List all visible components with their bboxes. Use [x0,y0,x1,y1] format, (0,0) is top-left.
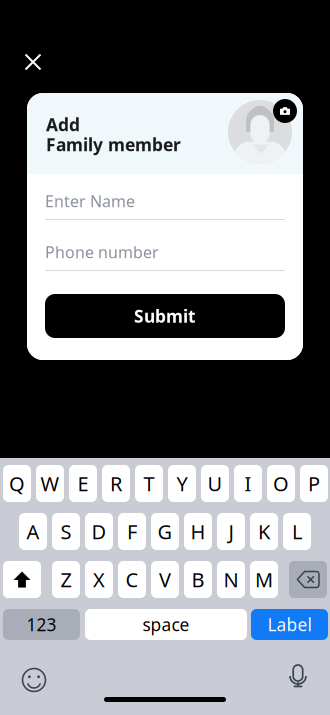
button[interactable]: B [184,561,212,598]
button[interactable]: M [250,561,278,598]
staticText: Q [9,470,25,497]
button[interactable]: Change photo [273,99,297,123]
button[interactable]: Label [251,609,328,640]
button[interactable]: O [267,465,295,502]
button[interactable]: Dictation [280,659,316,695]
staticText: F [127,518,137,545]
button[interactable]: T [135,465,163,502]
button[interactable]: V [151,561,179,598]
staticText: B [191,566,204,593]
button[interactable]: Submit [45,294,285,338]
button[interactable]: R [102,465,130,502]
staticText: M [255,566,273,593]
button[interactable]: P [300,465,328,502]
staticText: Phone number [45,241,159,263]
button[interactable]: Q [3,465,31,502]
button[interactable]: Enter Name [45,192,285,220]
button[interactable]: J [217,513,245,550]
staticText: G [157,518,172,545]
button[interactable]: I [234,465,262,502]
staticText: L [292,518,302,545]
button[interactable]: L [283,513,311,550]
button[interactable]: Delete [289,561,327,598]
staticText: H [190,518,205,545]
staticText: Family member [46,133,181,156]
staticText: K [258,518,270,545]
button[interactable]: Shift [3,561,41,598]
staticText: V [159,566,171,593]
button[interactable]: H [184,513,212,550]
button[interactable]: A [19,513,47,550]
staticText: A [26,518,39,545]
staticText: space [142,613,189,636]
staticText: Z [60,566,71,593]
staticText: Add [46,113,80,136]
staticText: P [308,470,320,497]
button[interactable]: Emoji [16,662,52,698]
staticText: R [110,470,122,497]
button[interactable]: F [118,513,146,550]
button[interactable]: S [52,513,80,550]
staticText: Y [176,470,187,497]
button[interactable]: G [151,513,179,550]
staticText: E [77,470,88,497]
staticText: Submit [134,304,196,327]
staticText: C [125,566,138,593]
staticText: T [143,470,154,497]
staticText: D [91,518,106,545]
button[interactable]: X [85,561,113,598]
staticText: U [207,470,222,497]
button[interactable]: space [85,609,247,640]
button[interactable]: Y [168,465,196,502]
staticText: S [60,518,71,545]
button[interactable]: N [217,561,245,598]
button[interactable]: Close [16,45,50,79]
button[interactable]: W [36,465,64,502]
staticText: X [93,566,105,593]
staticText: J [228,518,233,545]
button[interactable]: C [118,561,146,598]
button[interactable]: Phone number [45,243,285,271]
button[interactable]: K [250,513,278,550]
staticText: Label [267,613,311,636]
staticText: I [244,470,251,497]
staticText: N [223,566,238,593]
button[interactable]: U [201,465,229,502]
button[interactable]: Z [52,561,80,598]
button[interactable]: 123 [3,609,80,640]
staticText: Enter Name [45,190,135,212]
staticText: W [40,470,59,497]
button[interactable]: D [85,513,113,550]
staticText: 123 [26,613,56,636]
staticText: O [273,470,289,497]
button[interactable]: E [69,465,97,502]
